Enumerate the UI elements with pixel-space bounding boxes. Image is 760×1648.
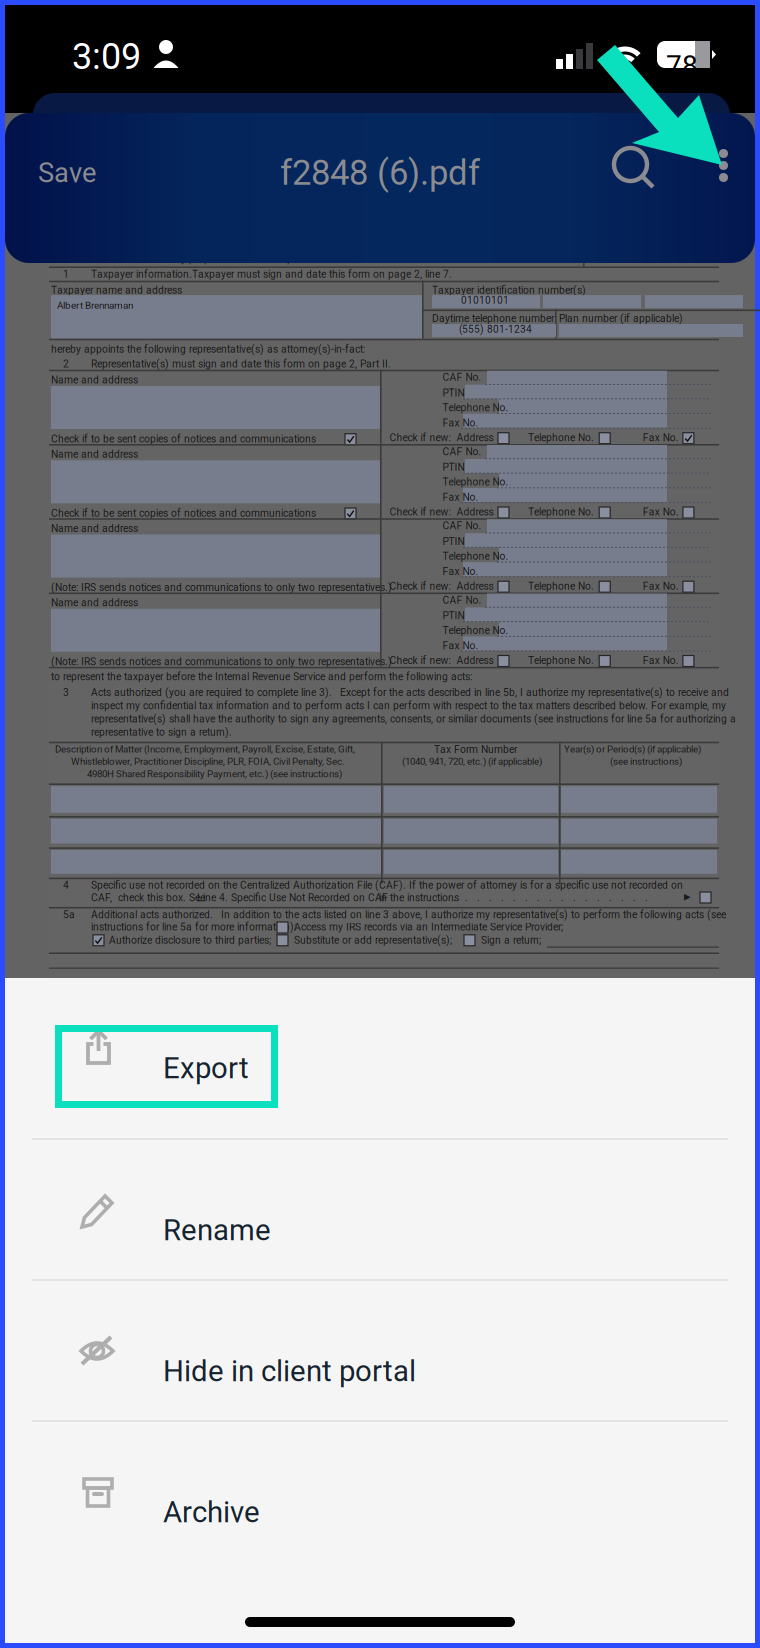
staticText: Telephone No.	[442, 402, 508, 414]
staticText: 3:09	[72, 36, 141, 78]
staticText: (see instructions)	[610, 756, 682, 767]
staticText: Daytime telephone number	[432, 312, 554, 324]
staticText: (Note: IRS sends notices and communicati…	[51, 581, 392, 593]
staticText: Acts authorized (you are required to com…	[91, 686, 332, 698]
staticText: Specific use not recorded on the Central…	[91, 879, 406, 891]
staticText: PTIN	[442, 461, 464, 473]
staticText: hereby appoints the following representa…	[51, 343, 365, 355]
staticText: Except for the acts described in line 5b…	[340, 686, 729, 698]
staticText: CAF No.	[442, 371, 481, 383]
staticText: 2	[63, 358, 69, 370]
button[interactable]: Rename	[5, 1140, 755, 1281]
staticText: Fax No.	[442, 565, 478, 577]
staticText: Telephone No.	[528, 432, 594, 444]
staticText: Fax No.	[643, 506, 679, 518]
staticText: Line 4. Specific Use Not Recorded on CAF	[197, 892, 388, 904]
staticText: Albert Brennaman	[57, 299, 133, 311]
staticText: Rename	[163, 1213, 271, 1247]
button[interactable]: Save	[5, 137, 158, 209]
staticText: Name and address	[51, 374, 138, 386]
staticText: 4	[63, 879, 69, 891]
staticText: inspect my confidential tax information …	[91, 700, 726, 712]
staticText: Check if new: Address	[389, 580, 493, 592]
staticText: Telephone No.	[442, 550, 508, 562]
staticText: ▶	[684, 891, 691, 902]
staticText: 01010101	[461, 294, 509, 306]
staticText: Year(s) or Period(s) (if applicable)	[564, 743, 701, 755]
button[interactable]: Search	[606, 142, 658, 194]
staticText: Plan number (if applicable)	[559, 312, 683, 324]
staticText: Telephone No.	[528, 654, 594, 666]
staticText: Fax No.	[643, 432, 679, 444]
staticText: PTIN	[442, 387, 464, 399]
staticText: representative(s) shall have the authori…	[91, 713, 736, 725]
staticText: . . . . . . . . . . . . . . . . .	[453, 892, 648, 904]
staticText: Save	[38, 157, 96, 189]
staticText: Authorize disclosure to third parties;	[109, 934, 271, 946]
staticText: Whistleblower, Practitioner Discipline, …	[71, 756, 345, 767]
staticText: CAF No.	[442, 594, 481, 606]
button[interactable]: More options	[699, 140, 747, 190]
staticText: Fax No.	[442, 491, 478, 503]
staticText: Taxpayer identification number(s)	[432, 284, 586, 296]
staticText: PTIN	[442, 610, 464, 622]
staticText: CAF No.	[442, 446, 481, 458]
staticText: to represent the taxpayer before the Int…	[51, 671, 472, 683]
staticText: Name and address	[51, 522, 138, 534]
button[interactable]: Archive	[5, 1422, 755, 1563]
staticText: Taxpayer must sign and date this form on…	[192, 268, 452, 280]
staticText: representative to sign a return).	[91, 726, 232, 738]
staticText: Description of Matter (Income, Employmen…	[55, 743, 355, 755]
staticText: Taxpayer name and address	[51, 284, 182, 296]
staticText: Check if to be sent copies of notices an…	[51, 507, 316, 519]
staticText: f2848 (6).pdf	[280, 153, 480, 193]
staticText: CAF, check this box. See	[91, 892, 205, 904]
staticText: If the power of attorney is for a specif…	[409, 879, 683, 891]
button[interactable]: Hide in client portal	[5, 1281, 755, 1422]
staticText: Name and address	[51, 448, 138, 460]
staticText: Telephone No.	[528, 506, 594, 518]
staticText: Telephone No.	[442, 624, 508, 636]
staticText: Telephone No.	[442, 476, 508, 488]
staticText: 5a	[63, 909, 75, 921]
staticText: for any purpose other than representatio…	[153, 253, 413, 265]
staticText: 3	[63, 686, 69, 698]
staticText: Check if new: Address	[389, 654, 493, 666]
staticText: 1	[63, 268, 69, 280]
staticText: Substitute or add representative(s);	[294, 934, 452, 946]
staticText: Fax No.	[442, 417, 478, 429]
staticText: Hide in client portal	[163, 1354, 416, 1388]
staticText: (555) 801-1234	[459, 323, 532, 335]
staticText: Tax Form Number	[434, 743, 517, 755]
staticText: Check if new: Address	[389, 506, 493, 518]
staticText: Access my IRS records via an Intermediat…	[294, 921, 563, 933]
staticText: PTIN	[442, 535, 464, 547]
staticText: (Note: IRS sends notices and communicati…	[51, 656, 392, 668]
staticText: Telephone No.	[528, 580, 594, 592]
staticText: Sign a return;	[481, 934, 541, 946]
staticText: Taxpayer information.	[91, 268, 192, 280]
staticText: (1040, 941, 720, etc.) (if applicable)	[402, 756, 542, 767]
staticText: Name and address	[51, 597, 138, 609]
button[interactable]: Export	[5, 978, 755, 1119]
staticText: 78	[666, 49, 698, 82]
staticText: 4980H Shared Responsibility Payment, etc…	[87, 768, 342, 779]
staticText: Check if new: Address	[389, 432, 493, 444]
staticText: Fax No.	[643, 580, 679, 592]
staticText: CAF No.	[442, 520, 481, 532]
staticText: Fax No.	[442, 640, 478, 652]
staticText: In addition to the acts listed on line 3…	[221, 909, 726, 921]
staticText: must sign and date this form on page 2, …	[172, 358, 391, 370]
staticText: Check if to be sent copies of notices an…	[51, 433, 316, 445]
staticText: instructions for line 5a for more inform…	[91, 921, 296, 933]
staticText: Export	[163, 1051, 249, 1085]
staticText: Representative(s)	[91, 358, 169, 370]
